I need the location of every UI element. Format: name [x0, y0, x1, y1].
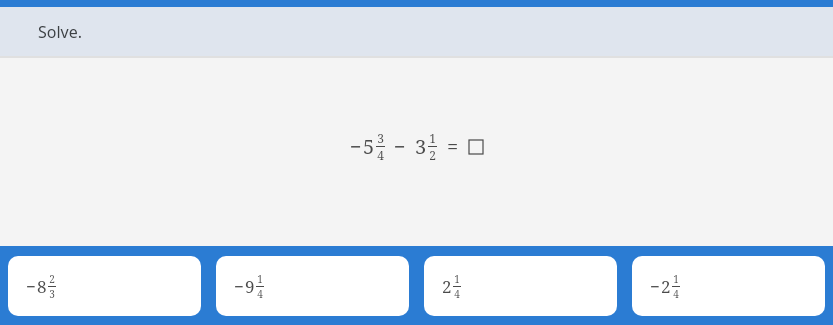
staticText: 3	[49, 287, 55, 301]
staticText: Solve.	[38, 21, 83, 43]
staticText: 4	[377, 147, 384, 163]
staticText: 3	[415, 133, 427, 160]
staticText: 4	[673, 287, 679, 301]
staticText: 2	[49, 272, 55, 286]
button[interactable]: 2	[424, 256, 617, 316]
staticText: −	[394, 133, 406, 160]
staticText: 1	[429, 130, 436, 146]
staticText: −	[234, 275, 244, 298]
staticText: 9	[245, 275, 255, 298]
staticText: 2	[661, 275, 671, 298]
staticText: −	[26, 275, 36, 298]
staticText: 4	[454, 287, 460, 301]
staticText: 2	[429, 147, 436, 163]
staticText: −	[350, 133, 362, 160]
staticText: =	[447, 133, 459, 160]
staticText: 4	[257, 287, 263, 301]
button[interactable]: −	[632, 256, 825, 316]
staticText: 1	[454, 272, 460, 286]
staticText: 3	[377, 130, 384, 146]
staticText: 1	[257, 272, 263, 286]
staticText: 2	[442, 275, 452, 298]
staticText: 1	[673, 272, 679, 286]
staticText: 5	[363, 133, 375, 160]
staticText: 8	[37, 275, 47, 298]
button[interactable]: −	[8, 256, 201, 316]
button[interactable]: −	[216, 256, 409, 316]
staticText: −	[650, 275, 660, 298]
